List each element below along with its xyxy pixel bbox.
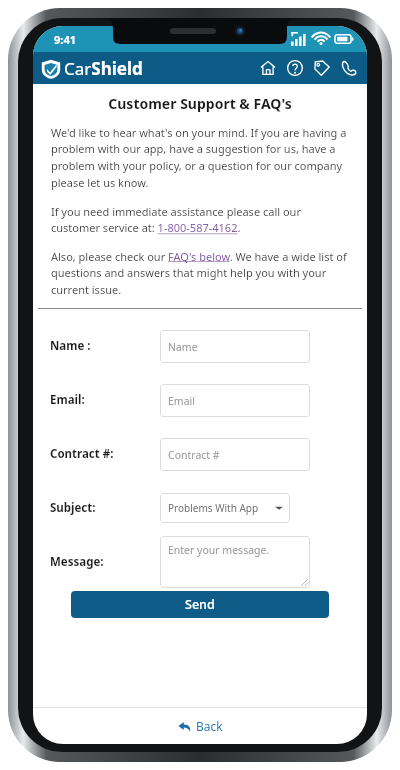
button[interactable]: Help [285,58,305,78]
staticText: Email: [50,392,160,408]
staticText: Customer Support & FAQ's [33,94,367,113]
staticText: CarShield [64,57,143,80]
staticText: Send [185,596,215,613]
staticText: Message: [50,554,160,570]
staticText: Contract #: [50,446,160,462]
staticText: Subject: [50,500,160,516]
button[interactable]: Name [160,330,310,363]
button[interactable]: Enter your message. [160,536,310,588]
staticText: We'd like to hear what's on your mind. I… [51,125,349,191]
staticText: Name [168,340,198,354]
staticText: Enter your message. [168,543,270,557]
staticText: Email [168,394,195,408]
staticText: 9:41 [54,32,76,47]
staticText: Also, please check our FAQ's below. We h… [51,249,349,298]
staticText: Problems With App [168,501,259,515]
button[interactable]: Offers [312,58,332,78]
button[interactable]: Email [160,384,310,417]
button[interactable]: Problems With App [160,493,290,523]
button[interactable]: Home [258,58,278,78]
staticText: Name : [50,338,160,354]
button[interactable]: Contract # [160,438,310,471]
staticText: Contract # [168,448,220,462]
staticText: If you need immediate assistance please … [51,204,349,236]
button[interactable]: Send [71,591,329,618]
staticText: Back [196,718,223,734]
button[interactable]: Call [339,58,359,78]
button[interactable]: Back [168,714,233,738]
